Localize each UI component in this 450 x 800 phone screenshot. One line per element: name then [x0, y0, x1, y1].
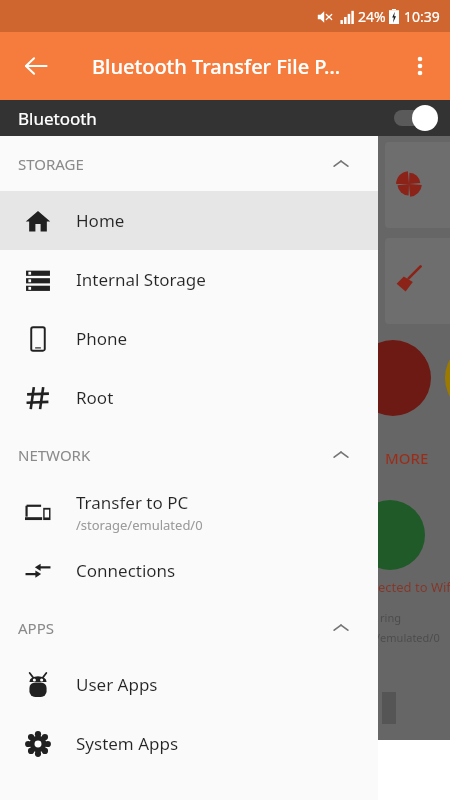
button[interactable]: APPS [0, 600, 378, 655]
button[interactable]: Bluetooth toggle [390, 100, 446, 136]
staticText: System Apps [76, 732, 179, 755]
button[interactable]: NETWORK [0, 427, 378, 482]
button[interactable]: More options [396, 42, 444, 90]
button[interactable]: STORAGE [0, 136, 378, 191]
button[interactable]: Home [0, 191, 378, 250]
button[interactable]: System Apps [0, 714, 378, 773]
button[interactable]: Root [0, 368, 378, 427]
staticText: Root [76, 386, 114, 409]
staticText: Internal Storage [76, 268, 206, 291]
staticText: Connections [76, 559, 176, 582]
button[interactable]: Transfer to PC [0, 482, 378, 541]
staticText: APPS [18, 618, 54, 638]
staticText: /emulated/0 [376, 630, 440, 645]
button[interactable]: Phone [0, 309, 378, 368]
staticText: /storage/emulated/0 [76, 516, 203, 534]
staticText: User Apps [76, 673, 158, 696]
staticText: MORE [385, 448, 429, 468]
staticText: Bluetooth Transfer File P… [92, 53, 341, 80]
staticText: 10:39 [404, 7, 440, 26]
staticText: Transfer to PC [76, 491, 189, 514]
staticText: ected to Wifi [378, 578, 450, 596]
staticText: Home [76, 209, 125, 232]
staticText: Bluetooth [18, 107, 97, 130]
button[interactable]: User Apps [0, 655, 378, 714]
staticText: 24% [358, 7, 386, 26]
staticText: NETWORK [18, 445, 91, 465]
button[interactable]: Internal Storage [0, 250, 378, 309]
button[interactable]: Connections [0, 541, 378, 600]
staticText: ring [380, 610, 401, 625]
button[interactable]: Back [12, 42, 60, 90]
staticText: Phone [76, 327, 128, 350]
staticText: STORAGE [18, 154, 84, 174]
